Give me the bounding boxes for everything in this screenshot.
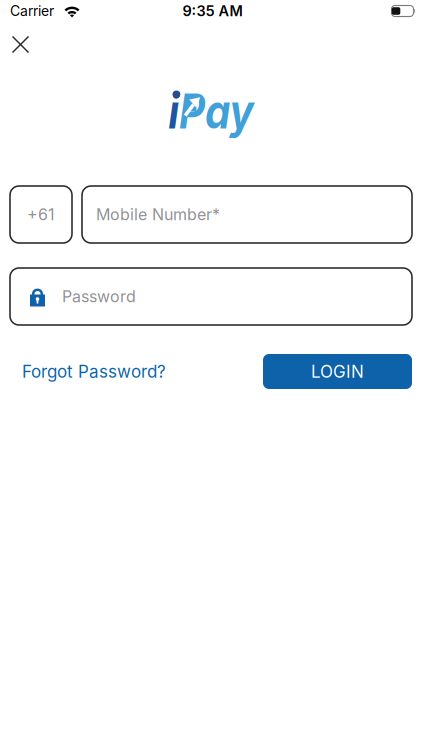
staticText: 9:35 AM: [182, 2, 242, 20]
staticText: Mobile Number*: [96, 205, 220, 224]
button[interactable]: Password: [10, 268, 412, 325]
staticText: Carrier: [10, 2, 54, 19]
button[interactable]: Close: [12, 36, 29, 53]
staticText: i: [160, 82, 173, 140]
button[interactable]: Country code +61: [10, 186, 72, 243]
staticText: Pay: [173, 82, 262, 140]
staticText: Forgot Password?: [22, 361, 166, 382]
staticText: Password: [62, 287, 136, 306]
button[interactable]: Mobile Number: [82, 186, 412, 243]
staticText: LOGIN: [311, 361, 364, 382]
staticText: +61: [27, 205, 55, 224]
button[interactable]: Forgot Password?: [22, 361, 166, 382]
button[interactable]: LOGIN: [263, 354, 412, 389]
